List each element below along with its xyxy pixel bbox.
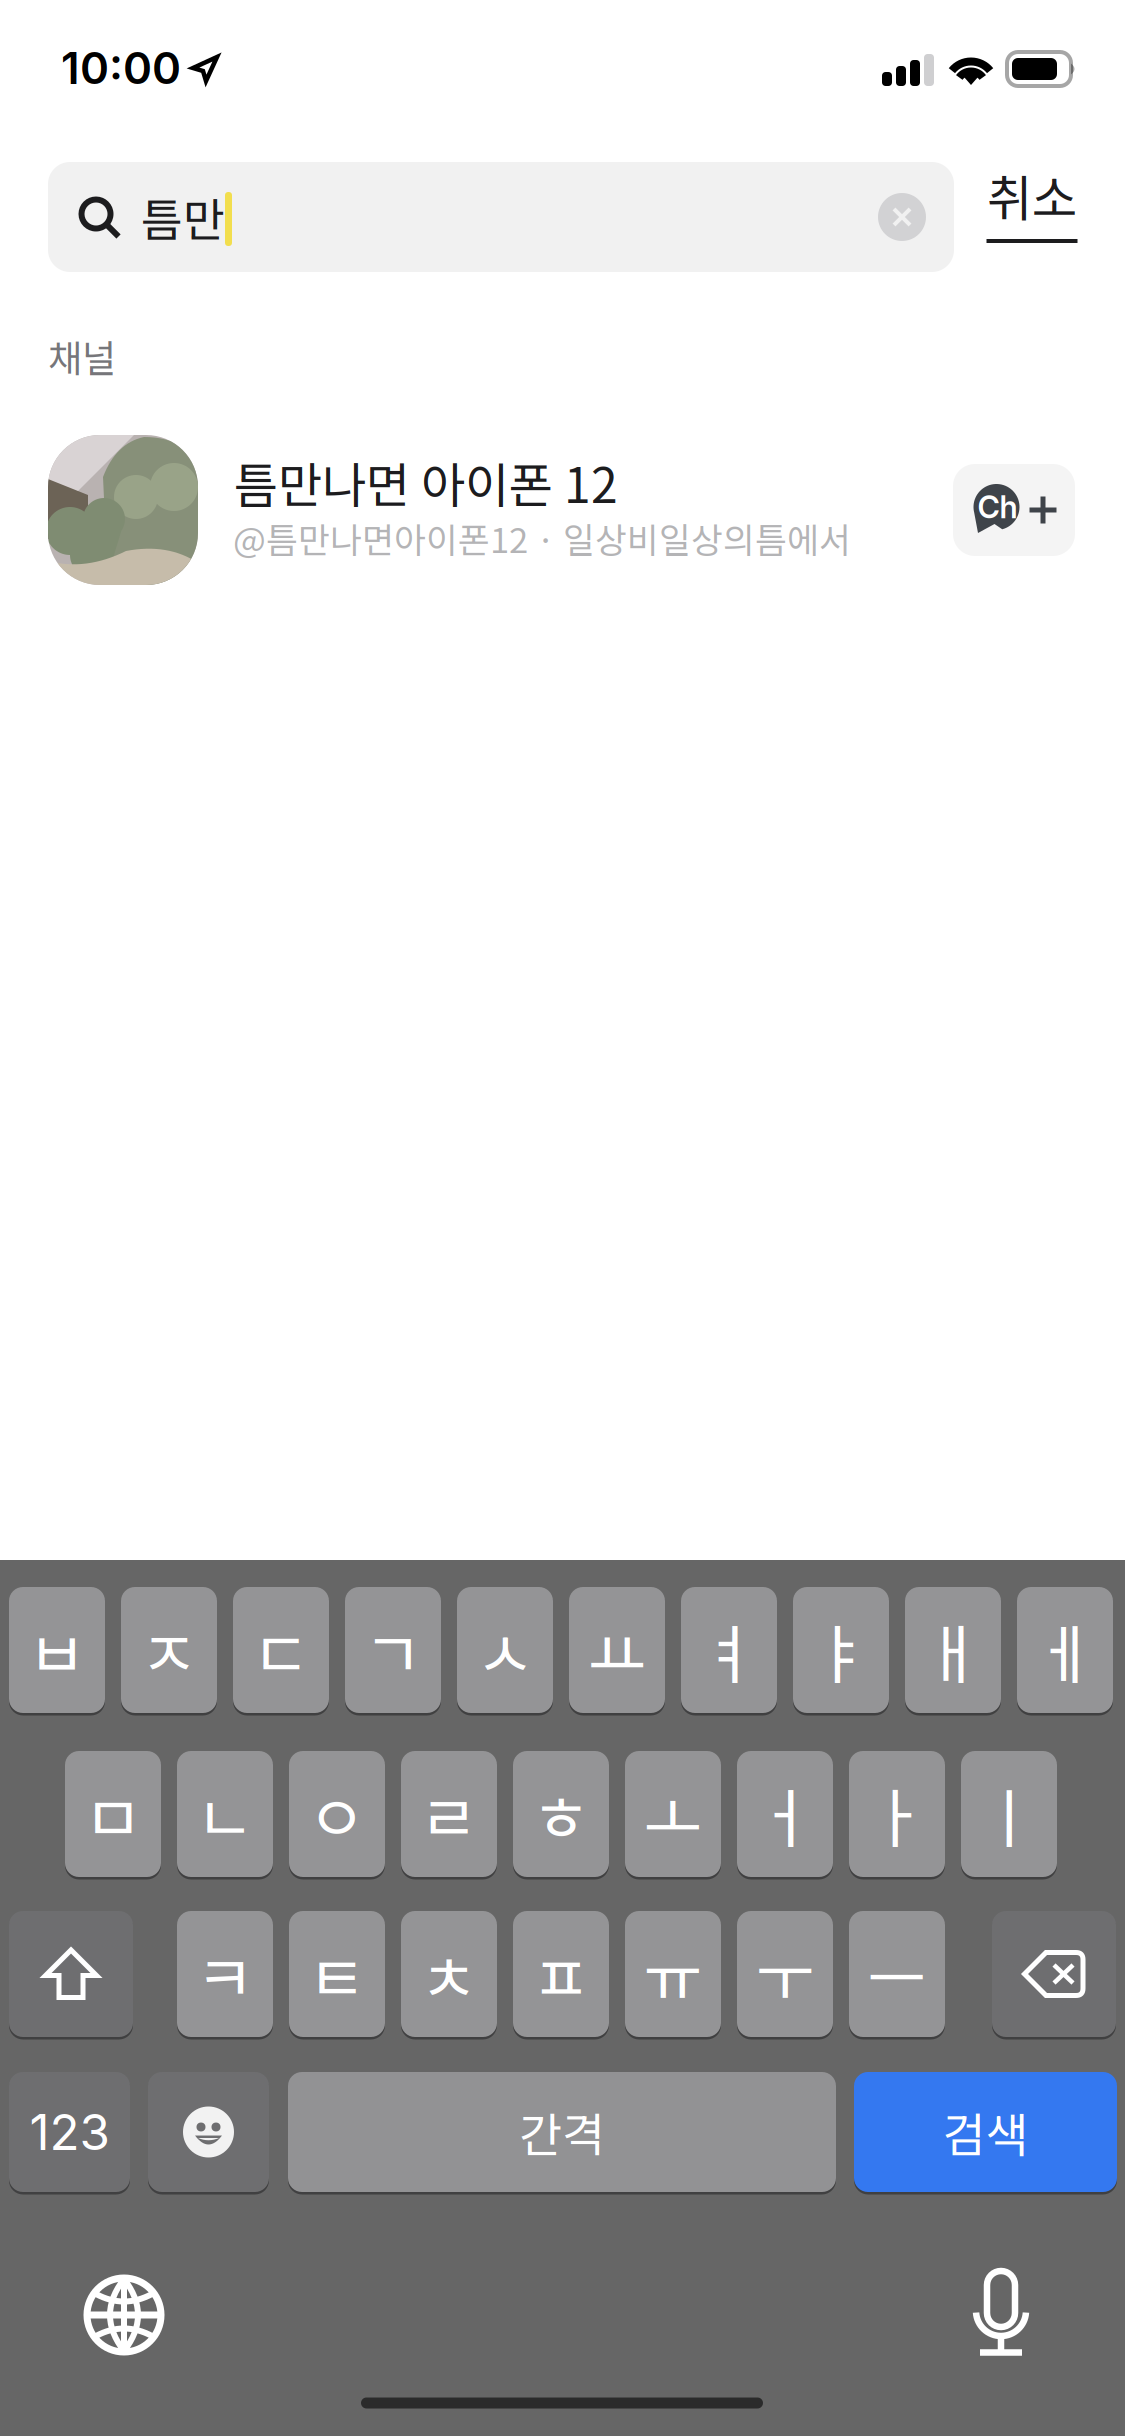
button[interactable]: ㅛ [569, 1585, 665, 1714]
button[interactable]: ㅕ [681, 1585, 777, 1714]
staticText: @틈만나면아이폰12 · 일상비일상의틈에서 [233, 513, 851, 563]
button[interactable]: ㅎ [513, 1749, 609, 1878]
staticText: Ch [977, 488, 1017, 525]
button[interactable]: Numbers [9, 2070, 130, 2193]
button[interactable]: 틈만나면 아이폰 12 [0, 435, 1125, 585]
staticText: ㅛ [587, 1604, 646, 1696]
staticText: 123 [29, 2102, 109, 2162]
button[interactable]: ㅋ [177, 1909, 273, 2038]
button[interactable]: ㅂ [9, 1585, 105, 1714]
staticText: ㄴ [195, 1768, 254, 1860]
button[interactable]: ㅗ [625, 1749, 721, 1878]
button[interactable]: ㅑ [793, 1585, 889, 1714]
button[interactable]: ㅊ [401, 1909, 497, 2038]
button[interactable]: ㅇ [289, 1749, 385, 1878]
button[interactable]: ㅓ [737, 1749, 833, 1878]
button[interactable]: Add channel [953, 464, 1075, 556]
staticText: ㅜ [755, 1928, 814, 2020]
button[interactable]: Clear text [865, 180, 939, 254]
button[interactable]: 취소 [977, 162, 1087, 272]
button[interactable]: Emoji [148, 2070, 269, 2193]
staticText: ㄷ [251, 1604, 310, 1696]
staticText: ㅠ [643, 1928, 702, 2020]
button[interactable]: Dictation [971, 2269, 1031, 2355]
staticText: ㅐ [923, 1604, 982, 1696]
button[interactable]: ㅜ [737, 1909, 833, 2038]
staticText: ㄱ [363, 1604, 422, 1696]
button[interactable]: ㅍ [513, 1909, 609, 2038]
staticText: ㅣ [979, 1768, 1038, 1860]
button[interactable]: Search [854, 2070, 1117, 2193]
staticText: ㅋ [195, 1928, 254, 2020]
staticText: 틈만 [141, 184, 225, 250]
button[interactable]: Space [288, 2070, 836, 2193]
staticText: ㅕ [699, 1604, 758, 1696]
button[interactable]: ㅐ [905, 1585, 1001, 1714]
staticText: ㅂ [27, 1604, 86, 1696]
staticText: ㅑ [811, 1604, 870, 1696]
button[interactable]: ㅈ [121, 1585, 217, 1714]
staticText: ㅓ [755, 1768, 814, 1860]
staticText: 채널 [48, 329, 116, 383]
staticText: ㅇ [307, 1768, 366, 1860]
staticText: 10:00 [61, 41, 181, 95]
button[interactable]: ㄱ [345, 1585, 441, 1714]
staticText: ㅊ [419, 1928, 478, 2020]
button[interactable]: ㅌ [289, 1909, 385, 2038]
button[interactable]: ㅡ [849, 1909, 945, 2038]
staticText: ㅁ [83, 1768, 142, 1860]
button[interactable]: Switch keyboard [84, 2275, 164, 2355]
staticText: 취소 [987, 159, 1077, 231]
staticText: ㄹ [419, 1768, 478, 1860]
button[interactable]: ㅁ [65, 1749, 161, 1878]
staticText: ㅅ [475, 1604, 534, 1696]
staticText: ㅏ [867, 1768, 926, 1860]
staticText: ㅗ [643, 1768, 702, 1860]
staticText: 간격 [519, 2098, 605, 2166]
button[interactable]: ㄹ [401, 1749, 497, 1878]
staticText: 틈만나면 아이폰 12 [234, 447, 618, 517]
button[interactable]: ㅅ [457, 1585, 553, 1714]
button[interactable]: ㄴ [177, 1749, 273, 1878]
staticText: ㅍ [531, 1928, 590, 2020]
button[interactable]: ㅣ [961, 1749, 1057, 1878]
staticText: 검색 [942, 2098, 1028, 2166]
staticText: ㅌ [307, 1928, 366, 2020]
staticText: ㅡ [867, 1928, 926, 2020]
button[interactable]: Delete [992, 1909, 1116, 2038]
staticText: ㅎ [531, 1768, 590, 1860]
button[interactable]: ㅠ [625, 1909, 721, 2038]
button[interactable]: ㅔ [1017, 1585, 1113, 1714]
staticText: ㅔ [1035, 1604, 1094, 1696]
button[interactable]: ㄷ [233, 1585, 329, 1714]
button[interactable]: Shift [9, 1909, 133, 2038]
staticText: ㅈ [139, 1604, 198, 1696]
button[interactable]: ㅏ [849, 1749, 945, 1878]
